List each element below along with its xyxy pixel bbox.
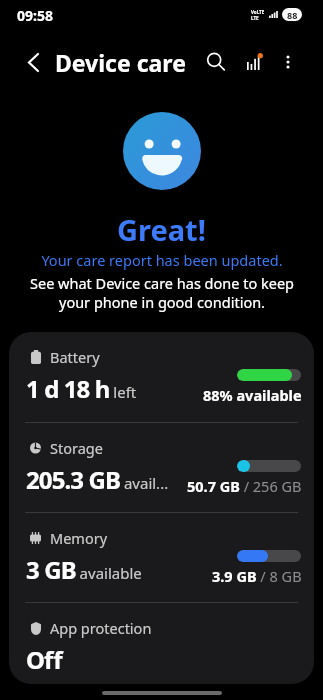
staticText: Your care report has been updated. — [41, 250, 283, 270]
staticText: VoLTE — [251, 9, 265, 15]
staticText: 3 GB available — [26, 553, 142, 586]
staticText: Device care — [55, 47, 186, 78]
staticText: 88% available — [203, 385, 302, 405]
button[interactable]: App protection — [9, 603, 314, 684]
button[interactable]: Storage — [9, 423, 314, 512]
staticText: 50.7 GB / 256 GB — [187, 476, 302, 496]
staticText: 3.9 GB / 8 GB — [212, 566, 302, 586]
button[interactable]: Memory — [9, 513, 314, 602]
button[interactable]: Search — [199, 45, 233, 79]
staticText: App protection — [50, 618, 152, 638]
staticText: Battery — [50, 347, 100, 367]
staticText: Great! — [117, 210, 206, 249]
staticText: 205.3 GB avail... — [26, 463, 169, 496]
staticText: LTE — [251, 15, 259, 21]
staticText: 1 d 18 h left — [26, 372, 137, 405]
staticText: 09:58 — [17, 6, 53, 25]
button[interactable]: Back — [16, 45, 50, 79]
staticText: See what Device care has done to keep yo… — [28, 273, 296, 312]
button[interactable]: More options — [271, 45, 305, 79]
staticText: Off — [26, 643, 62, 676]
button[interactable]: Usage statistics — [237, 45, 271, 79]
staticText: Memory — [50, 528, 108, 548]
button[interactable]: Battery — [9, 332, 314, 422]
staticText: Storage — [50, 438, 103, 458]
staticText: 88 — [287, 9, 298, 21]
